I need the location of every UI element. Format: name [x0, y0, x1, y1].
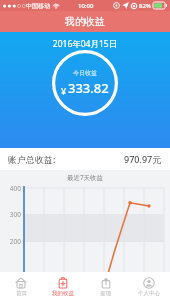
staticText: 2016年04月15日 [0, 38, 170, 50]
staticText: 中国移动 [26, 2, 50, 10]
button[interactable]: 账户总收益: [0, 148, 170, 170]
staticText: 400 [5, 184, 21, 193]
staticText: 300 [5, 210, 21, 219]
staticText: 提现 [100, 290, 111, 297]
staticText: 333.82 [68, 79, 109, 97]
staticText: 首页 [16, 290, 27, 297]
staticText: 今日收益 [73, 69, 97, 77]
staticText: 账户总收益: [8, 153, 56, 165]
staticText: 82% [139, 2, 151, 10]
button[interactable]: 个人中心 [127, 272, 170, 301]
staticText: ¥ [61, 85, 67, 97]
staticText: 10:00 [78, 2, 94, 10]
staticText: 我的收益 [65, 15, 105, 28]
staticText: 200 [5, 237, 21, 246]
staticText: 个人中心 [138, 290, 160, 297]
staticText: 我的收益 [52, 290, 74, 297]
button[interactable]: 提现 [84, 272, 127, 301]
staticText: 最近7天收益 [0, 173, 170, 182]
staticText: 970.97元 [124, 153, 162, 165]
button[interactable]: 我的收益 [42, 272, 84, 301]
button[interactable]: 首页 [0, 272, 42, 301]
